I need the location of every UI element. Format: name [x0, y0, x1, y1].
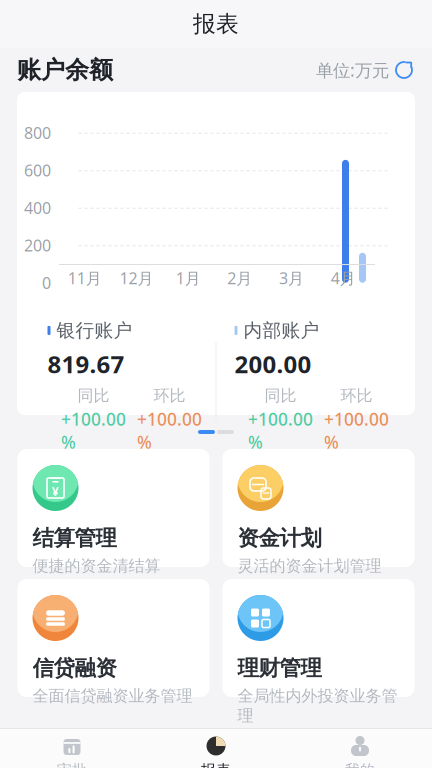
- button[interactable]: 资金计划: [222, 449, 414, 567]
- button[interactable]: 报表: [144, 734, 288, 768]
- button[interactable]: 我的: [288, 734, 432, 768]
- staticText: 灵活的资金计划管理: [237, 556, 381, 576]
- staticText: +100.00%: [61, 407, 126, 453]
- staticText: 报表: [201, 761, 231, 768]
- button[interactable]: 理财管理: [222, 579, 414, 697]
- button[interactable]: 审批: [0, 734, 144, 768]
- button[interactable]: 信贷融资: [17, 579, 209, 697]
- staticText: 环比: [153, 386, 185, 405]
- staticText: 内部账户: [243, 319, 319, 342]
- staticText: 800: [24, 122, 51, 143]
- staticText: 200: [24, 235, 51, 256]
- button[interactable]: 刷新: [389, 55, 419, 85]
- staticText: 12月: [119, 267, 153, 289]
- staticText: +100.00%: [248, 407, 313, 453]
- staticText: 2月: [227, 267, 252, 289]
- staticText: 1月: [176, 267, 201, 289]
- staticText: 400: [24, 197, 51, 218]
- staticText: 同比: [77, 386, 109, 405]
- staticText: 全局性内外投资业务管理: [237, 686, 397, 725]
- staticText: 我的: [345, 761, 375, 768]
- staticText: 报表: [193, 10, 239, 38]
- staticText: 账户余额: [17, 55, 113, 85]
- staticText: ¥: [52, 483, 59, 499]
- button[interactable]: ¥: [17, 449, 209, 567]
- staticText: 便捷的资金清结算: [32, 556, 160, 576]
- staticText: 11月: [68, 267, 102, 289]
- staticText: 资金计划: [237, 525, 321, 551]
- staticText: 4月: [331, 267, 356, 289]
- staticText: 同比: [264, 386, 296, 405]
- staticText: 理财管理: [237, 655, 321, 681]
- staticText: 3月: [279, 267, 304, 289]
- staticText: 信贷融资: [32, 655, 116, 681]
- staticText: 结算管理: [32, 525, 116, 551]
- staticText: +100.00%: [324, 407, 389, 453]
- staticText: 环比: [340, 386, 372, 405]
- staticText: 单位:万元: [316, 58, 389, 81]
- staticText: 审批: [57, 761, 87, 768]
- staticText: 819.67: [47, 348, 124, 380]
- staticText: +100.00%: [137, 407, 202, 453]
- staticText: 200.00: [234, 348, 311, 380]
- staticText: 600: [24, 160, 51, 181]
- staticText: 0: [42, 272, 51, 293]
- staticText: 银行账户: [56, 319, 132, 342]
- staticText: 全面信贷融资业务管理: [32, 686, 192, 706]
